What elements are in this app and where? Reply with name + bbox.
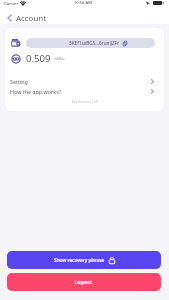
- staticText: sMtu: [55, 56, 65, 61]
- staticText: How the app works?: [10, 88, 62, 95]
- button[interactable]: Logout.: [7, 273, 161, 291]
- other: Back: [7, 14, 12, 22]
- staticText: 10:56 AM: [74, 0, 92, 6]
- staticText: Account: [16, 13, 46, 22]
- staticText: Setting: [10, 78, 28, 85]
- staticText: 0.509: [26, 52, 51, 65]
- button[interactable]: Back: [0, 11, 53, 24]
- button[interactable]: How the app works?: [5, 86, 164, 96]
- button[interactable]: Show recovery phrase: [7, 251, 161, 269]
- staticText: Logout.: [75, 279, 93, 286]
- staticText: App Version v 1.0.0: [72, 100, 98, 104]
- button[interactable]: 3KEf1sxBGS...6runiJZFr: [26, 38, 155, 48]
- staticText: Show recovery phrase: [54, 257, 105, 264]
- staticText: Carrier: [4, 0, 19, 6]
- other: Copy address: [123, 41, 127, 46]
- button[interactable]: Setting: [5, 76, 164, 86]
- staticText: 3KEf1sxBGS...6runiJZFr: [69, 40, 119, 46]
